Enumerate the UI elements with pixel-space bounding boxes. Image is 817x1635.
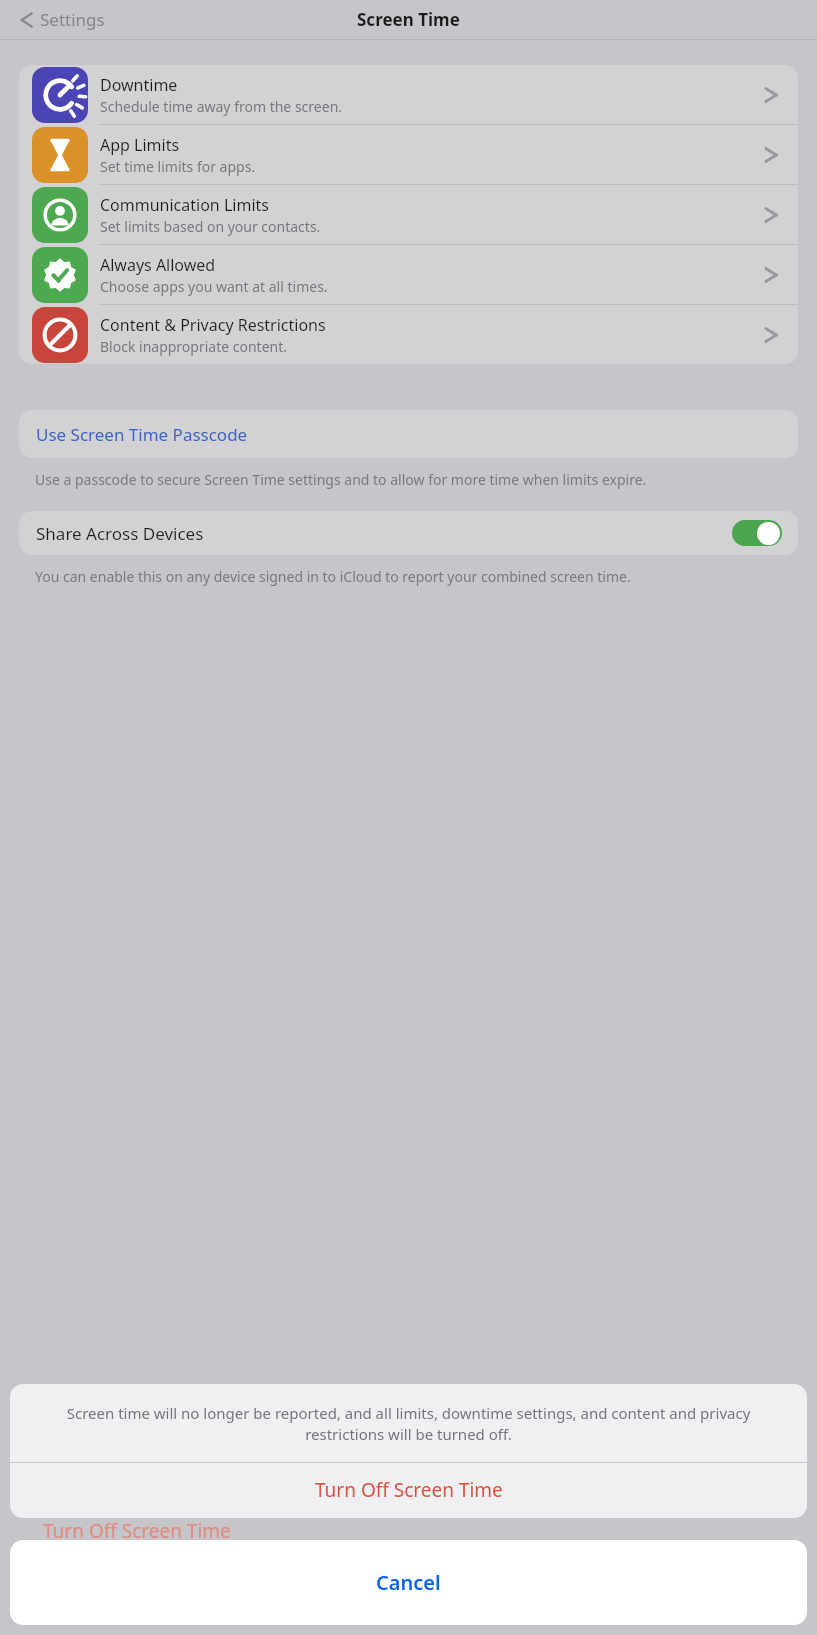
button[interactable]: Communication Limits [19, 185, 798, 245]
staticText: Choose apps you want at all times. [100, 277, 328, 296]
staticText: App Limits [100, 134, 180, 156]
staticText: Content & Privacy Restrictions [100, 314, 326, 336]
button[interactable]: Downtime [19, 65, 798, 125]
button[interactable]: Share Across Devices [19, 511, 798, 555]
staticText: Screen Time [357, 8, 460, 31]
staticText: You can enable this on any device signed… [35, 567, 631, 586]
staticText: Turn Off Screen Time [315, 1477, 503, 1503]
staticText: Set time limits for apps. [100, 157, 256, 176]
staticText: Schedule time away from the screen. [100, 97, 343, 116]
staticText: Communication Limits [100, 194, 269, 216]
staticText: Set limits based on your contacts. [100, 217, 321, 236]
staticText: Turn Off Screen Time [43, 1518, 231, 1540]
button[interactable]: Cancel [10, 1540, 807, 1625]
button[interactable]: Always Allowed [19, 245, 798, 305]
staticText: Always Allowed [100, 254, 216, 276]
staticText: Use Screen Time Passcode [36, 423, 248, 446]
button[interactable]: Content & Privacy Restrictions [19, 305, 798, 364]
staticText: Block inappropriate content. [100, 337, 288, 356]
staticText: Use a passcode to secure Screen Time set… [35, 470, 647, 489]
button[interactable]: Settings [10, 4, 109, 35]
staticText: Downtime [100, 74, 178, 96]
staticText: Settings [40, 8, 105, 31]
button[interactable]: App Limits [19, 125, 798, 185]
staticText: Share Across Devices [36, 522, 204, 545]
button[interactable]: Turn Off Screen Time [10, 1463, 807, 1516]
staticText: Screen time will no longer be reported, … [32, 1403, 785, 1445]
other: Share Across Devices toggle, on [732, 520, 782, 546]
button[interactable]: Use Screen Time Passcode [19, 410, 798, 458]
staticText: Cancel [376, 1569, 441, 1596]
